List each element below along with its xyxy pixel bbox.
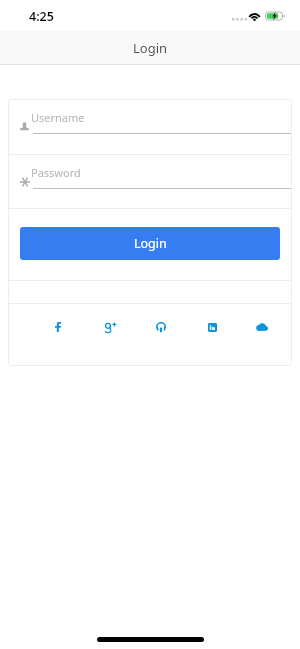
button[interactable]: Sign in with cloud account <box>248 313 276 341</box>
staticText: 4:25 <box>29 8 54 25</box>
staticText: Password <box>31 165 81 180</box>
button[interactable]: Username <box>8 99 292 154</box>
button[interactable]: Sign in with Google Plus <box>97 313 125 341</box>
staticText: Login <box>133 39 168 57</box>
button[interactable]: Sign in with GitHub <box>147 313 175 341</box>
button[interactable]: Login <box>20 227 280 260</box>
button[interactable]: Sign in with Facebook <box>44 313 72 341</box>
button[interactable]: Password <box>8 155 292 208</box>
staticText: Login <box>134 235 167 252</box>
button[interactable]: Sign in with LinkedIn <box>198 313 226 341</box>
staticText: Username <box>31 110 85 125</box>
